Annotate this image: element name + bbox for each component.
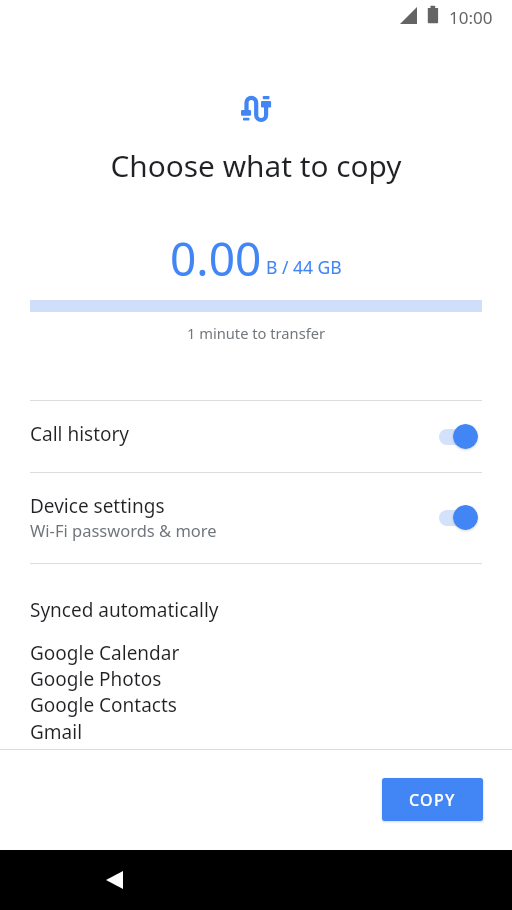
staticText: Google Calendar [30, 640, 180, 666]
button[interactable]: Call history [0, 401, 512, 472]
staticText: Wi-Fi passwords & more [30, 519, 217, 541]
staticText: Google Photos [30, 666, 162, 692]
staticText: Call history [30, 421, 130, 447]
staticText: Synced automatically [30, 597, 219, 623]
staticText: 1 minute to transfer [0, 323, 512, 343]
other: Battery full [427, 5, 439, 24]
staticText: 0.00 [170, 227, 262, 290]
other: Cable transfer [241, 95, 272, 121]
button[interactable]: Toggle [438, 505, 482, 531]
staticText: Device settings [30, 493, 165, 519]
staticText: COPY [409, 789, 456, 811]
staticText: 10:00 [449, 6, 493, 29]
staticText: B / 44 GB [266, 255, 342, 279]
button[interactable]: Toggle [438, 424, 482, 450]
button[interactable]: COPY [382, 778, 483, 821]
other: Signal strength [400, 7, 417, 24]
button[interactable]: Back [92, 858, 136, 902]
button[interactable]: Device settings [0, 473, 512, 563]
staticText: Choose what to copy [0, 145, 512, 186]
staticText: Gmail [30, 719, 83, 745]
staticText: Google Contacts [30, 692, 177, 718]
